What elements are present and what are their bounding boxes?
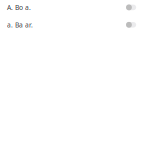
staticText: A. Bo a. [7, 3, 31, 12]
button[interactable]: a. Ba ar. [0, 21, 150, 28]
staticText: a. Ba ar. [7, 20, 33, 29]
button[interactable]: A. Bo a. [0, 4, 150, 11]
